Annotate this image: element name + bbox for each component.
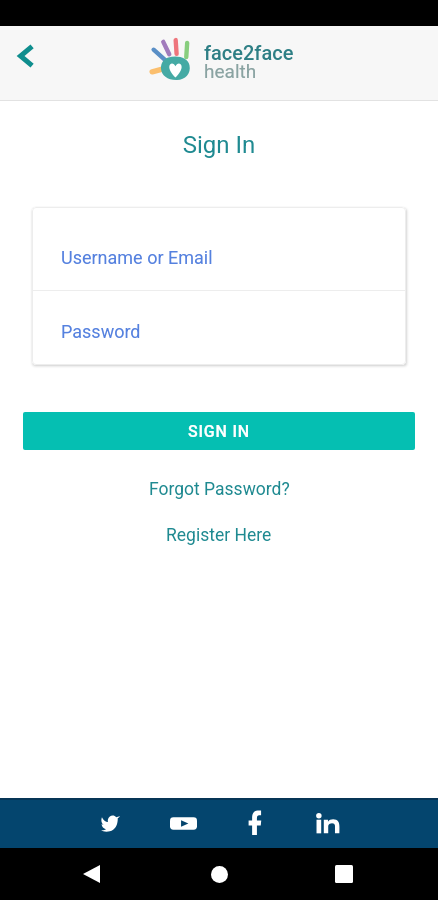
staticText: Sign In (0, 131, 438, 159)
staticText: Password (61, 321, 141, 342)
button[interactable]: Home (199, 854, 239, 894)
button[interactable]: Recents (324, 854, 364, 894)
staticText: face2face (204, 41, 294, 64)
button[interactable]: YouTube (160, 801, 206, 847)
button[interactable]: Password (32, 291, 406, 365)
button[interactable]: Back (6, 36, 46, 76)
button[interactable]: Register Here (156, 519, 282, 552)
button[interactable]: Twitter (88, 801, 134, 847)
staticText: Username or Email (61, 247, 213, 268)
button[interactable]: Username or Email (32, 207, 406, 290)
button[interactable]: SIGN IN (23, 412, 415, 450)
button[interactable]: Forgot Password? (139, 473, 300, 506)
staticText: health (204, 60, 257, 82)
staticText: SIGN IN (188, 422, 250, 441)
button[interactable]: LinkedIn (304, 801, 350, 847)
button[interactable]: Back (71, 854, 111, 894)
button[interactable]: Facebook (232, 801, 278, 847)
